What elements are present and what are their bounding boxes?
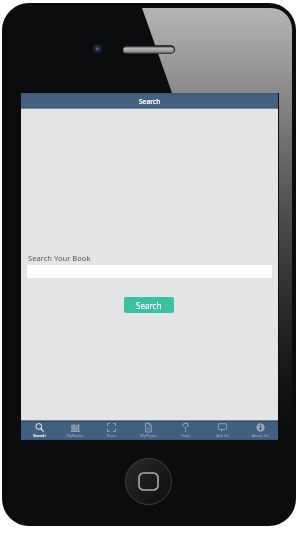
staticText: Help (181, 433, 190, 438)
staticText: MyBooks (66, 433, 84, 438)
staticText: About Us (251, 433, 269, 438)
staticText: Search (136, 300, 162, 311)
staticText: Scan (107, 433, 116, 438)
button[interactable]: MyPages (130, 420, 167, 440)
button[interactable]: MyBooks (57, 420, 93, 440)
button[interactable]: Ask Us (204, 420, 241, 440)
button[interactable]: Search (124, 297, 174, 313)
staticText: Search (139, 97, 161, 106)
staticText: MyPages (140, 433, 157, 438)
button[interactable]: Scan (93, 420, 130, 440)
button[interactable]: Help (167, 420, 204, 440)
staticText: Search (33, 433, 46, 438)
button[interactable]: Search (21, 420, 57, 440)
button[interactable]: Home (125, 458, 172, 505)
staticText: Ask Us (216, 433, 229, 438)
staticText: Search Your Book (28, 253, 91, 263)
button[interactable]: About Us (241, 420, 278, 440)
